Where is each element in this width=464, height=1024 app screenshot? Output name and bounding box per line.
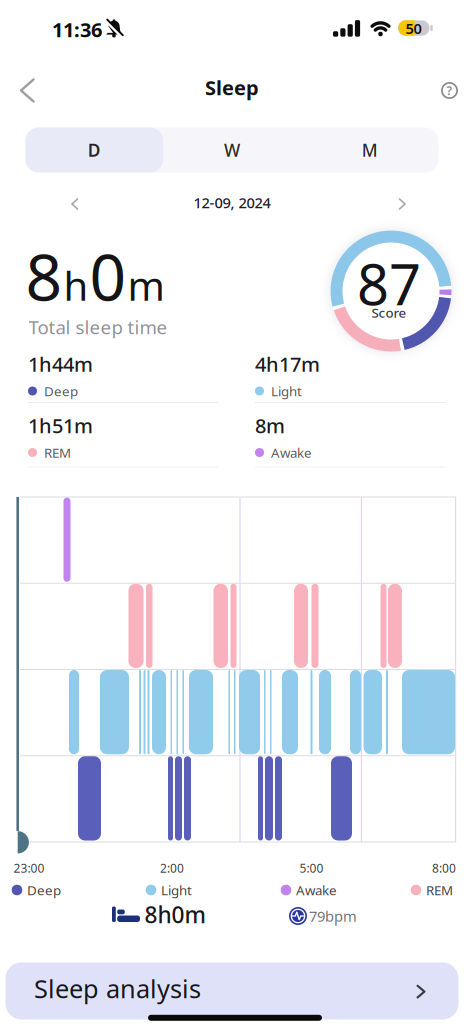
button[interactable]: Sleep analysis [5,962,458,1019]
staticText: 1h51m [28,412,93,439]
staticText: W [224,138,240,161]
staticText: 8:00 [432,860,456,876]
staticText: M [362,138,378,161]
staticText: Total sleep time [28,315,167,339]
staticText: 79bpm [309,906,357,926]
staticText: 8h0m [144,899,205,929]
staticText: Deep [44,382,78,400]
staticText: 11:36 [52,16,102,43]
staticText: 23:00 [13,860,44,876]
staticText: ? [446,82,452,98]
staticText: 50 [405,18,421,38]
button[interactable]: Next day [387,189,417,219]
button[interactable]: M [301,127,439,172]
staticText: 2:00 [160,860,184,876]
button[interactable]: Previous day [59,189,89,219]
staticText: Sleep analysis [34,972,201,1005]
button[interactable]: W [163,127,301,172]
staticText: Deep [27,881,61,899]
staticText: 1h44m [28,351,93,377]
staticText: REM [426,881,453,899]
staticText: Awake [271,444,312,461]
staticText: 0 [89,233,126,318]
staticText: Light [271,382,302,400]
button[interactable]: Help [427,68,464,112]
staticText: 12-09, 2024 [193,193,270,212]
staticText: D [88,138,101,161]
staticText: 87 [357,246,421,321]
staticText: 8 [25,233,62,318]
staticText: 8m [255,412,285,439]
button[interactable]: D [25,127,163,172]
button[interactable]: Back [2,68,46,112]
staticText: 4h17m [255,351,320,377]
staticText: Score [371,304,406,321]
staticText: Light [161,881,192,899]
staticText: REM [44,444,71,461]
staticText: Sleep [205,74,259,101]
staticText: h [63,259,88,312]
staticText: 5:00 [299,860,323,876]
staticText: m [127,259,164,312]
staticText: Awake [296,881,337,899]
